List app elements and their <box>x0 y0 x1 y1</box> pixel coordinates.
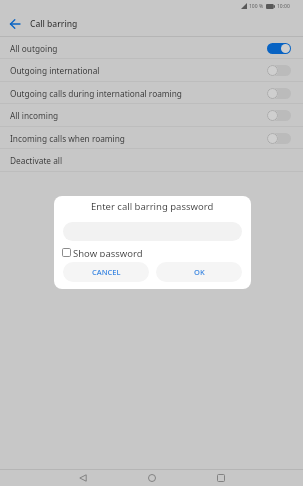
staticText: Outgoing calls during international roam… <box>10 88 182 99</box>
staticText: All incoming <box>10 110 59 121</box>
button[interactable]: Outgoing international <box>0 59 303 82</box>
button[interactable]: Deactivate all <box>0 149 303 172</box>
button[interactable]: Incoming calls when roaming <box>0 127 303 149</box>
button[interactable] <box>3 12 27 36</box>
button[interactable]: Outgoing calls during international roam… <box>0 82 303 104</box>
button[interactable]: All outgoing <box>0 37 303 59</box>
button[interactable] <box>186 470 255 486</box>
staticText: Deactivate all <box>10 155 63 166</box>
button[interactable]: All incoming <box>0 104 303 127</box>
button[interactable]: CANCEL <box>63 262 149 282</box>
staticText: Show password <box>73 247 143 257</box>
staticText: All outgoing <box>10 43 58 54</box>
staticText: Outgoing international <box>10 65 100 76</box>
button[interactable] <box>117 470 186 486</box>
staticText: Enter call barring password <box>91 200 214 213</box>
staticText: 10:00 <box>277 3 290 10</box>
button[interactable]: OK <box>156 262 242 282</box>
button[interactable] <box>48 470 117 486</box>
button[interactable]: Show password <box>62 247 143 257</box>
staticText: Call barring <box>30 18 78 30</box>
staticText: 100 % <box>249 3 264 10</box>
staticText: CANCEL <box>92 267 121 277</box>
staticText: OK <box>194 267 205 277</box>
staticText: Incoming calls when roaming <box>10 133 125 144</box>
